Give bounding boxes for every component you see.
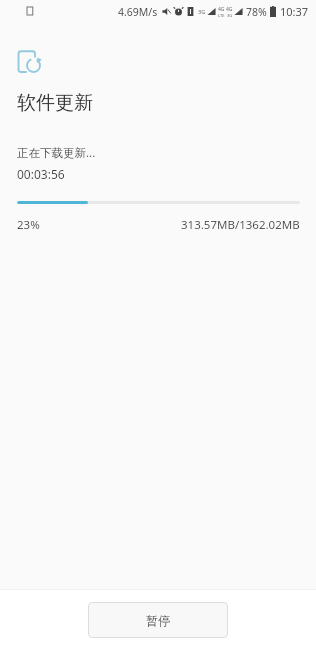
staticText: 313.57MB/1362.02MB [181, 217, 300, 233]
staticText: 3G [198, 8, 206, 15]
staticText: 4G [218, 6, 225, 13]
staticText: 78% [246, 5, 267, 19]
staticText: 23% [17, 217, 40, 233]
staticText: 00:03:56 [17, 166, 65, 182]
staticText: 3G [227, 13, 233, 18]
other: Software update [17, 50, 42, 75]
staticText: 4G [226, 6, 233, 13]
staticText: 10:37 [280, 4, 309, 19]
staticText: 正在下载更新... [17, 145, 96, 161]
button[interactable]: 暂停 [88, 602, 228, 638]
staticText: 软件更新 [17, 91, 93, 115]
staticText: 4.69M/s [118, 5, 158, 19]
staticText: 暂停 [146, 613, 170, 628]
staticText: LTE [218, 13, 225, 18]
